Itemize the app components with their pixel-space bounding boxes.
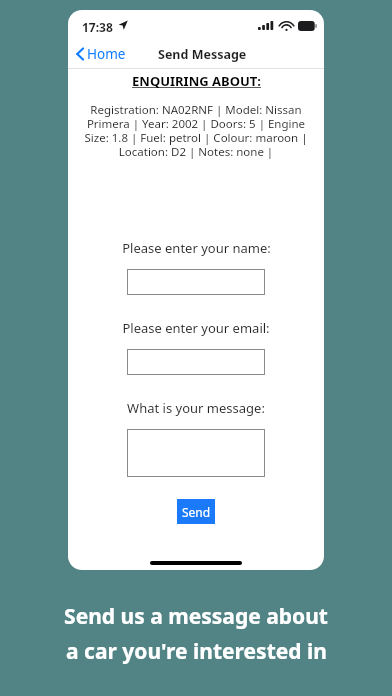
button[interactable]: Email input field xyxy=(127,349,265,375)
staticText: What is your message: xyxy=(127,399,265,417)
button[interactable]: Name input field xyxy=(127,269,265,295)
staticText: 17:38 xyxy=(82,19,113,35)
staticText: Please enter your email: xyxy=(122,319,270,337)
staticText: a car you're interested in xyxy=(66,637,327,666)
staticText: Please enter your name: xyxy=(122,239,271,257)
button[interactable]: Send xyxy=(177,499,215,524)
staticText: Registration: NA02RNF | Model: Nissan Pr… xyxy=(76,102,316,159)
staticText: ENQUIRING ABOUT: xyxy=(132,72,261,90)
staticText: Send us a message about xyxy=(64,602,328,631)
staticText: Home xyxy=(87,45,126,63)
staticText: Send xyxy=(182,504,211,520)
staticText: Send Message xyxy=(158,46,247,63)
button[interactable]: Message input field xyxy=(127,429,265,477)
button[interactable]: Home xyxy=(72,42,130,66)
